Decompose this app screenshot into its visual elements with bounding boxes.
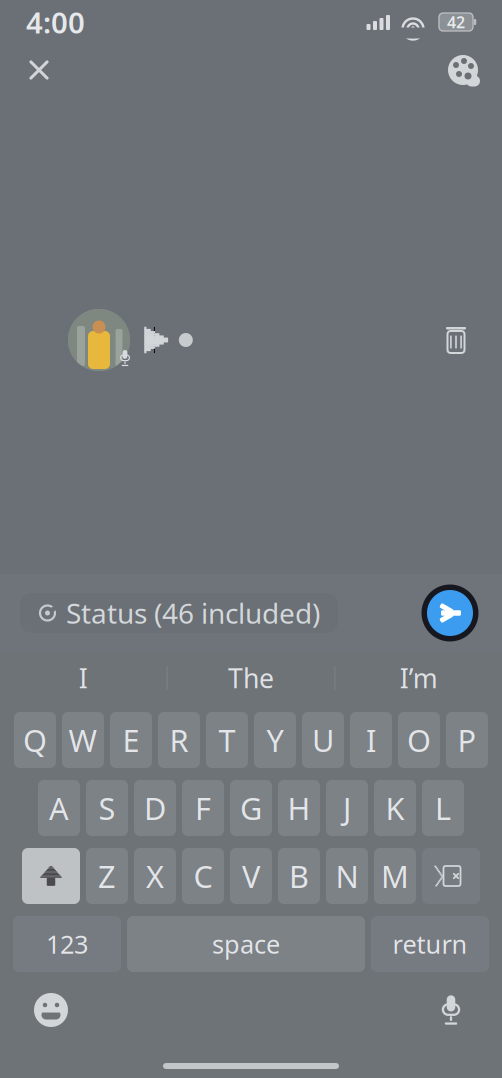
button[interactable]: Delete — [434, 318, 478, 362]
button[interactable]: Q — [14, 712, 56, 768]
button[interactable]: V — [230, 848, 272, 904]
button[interactable]: W — [62, 712, 104, 768]
staticText: K — [385, 788, 404, 828]
staticText: I’m — [400, 660, 438, 696]
button[interactable]: I — [0, 652, 167, 704]
button[interactable]: 123 — [13, 916, 121, 972]
staticText: M — [381, 856, 409, 896]
staticText: W — [68, 720, 97, 760]
staticText: X — [146, 856, 164, 896]
button[interactable]: Send — [419, 582, 481, 644]
button[interactable]: L — [422, 780, 464, 836]
staticText: The — [228, 660, 274, 696]
staticText: F — [195, 788, 211, 828]
button[interactable]: M — [374, 848, 416, 904]
button[interactable]: Dictate — [422, 984, 480, 1036]
staticText: return — [392, 927, 467, 961]
button[interactable]: Emoji — [22, 984, 80, 1036]
button[interactable]: O — [398, 712, 440, 768]
button[interactable]: D — [134, 780, 176, 836]
button[interactable]: Y — [254, 712, 296, 768]
button[interactable]: R — [158, 712, 200, 768]
staticText: I — [366, 720, 376, 760]
button[interactable]: return — [371, 916, 489, 972]
button[interactable]: G — [230, 780, 272, 836]
staticText: H — [287, 788, 310, 828]
button[interactable]: Shift — [22, 848, 80, 904]
button[interactable]: I’m — [335, 652, 502, 704]
staticText: R — [169, 720, 188, 760]
button[interactable]: T — [206, 712, 248, 768]
staticText: U — [312, 720, 334, 760]
button[interactable]: U — [302, 712, 344, 768]
button[interactable]: space — [127, 916, 365, 972]
staticText: J — [343, 788, 351, 828]
button[interactable]: Theme — [440, 47, 486, 93]
staticText: Q — [23, 720, 47, 760]
staticText: T — [218, 720, 235, 760]
staticText: P — [457, 720, 476, 760]
staticText: S — [98, 788, 115, 828]
staticText: 42 — [447, 11, 465, 33]
staticText: N — [335, 856, 358, 896]
button[interactable]: S — [86, 780, 128, 836]
button[interactable]: J — [326, 780, 368, 836]
button[interactable]: F — [182, 780, 224, 836]
staticText: A — [49, 788, 69, 828]
staticText: 4:00 — [26, 2, 85, 41]
button[interactable]: Delete — [422, 848, 480, 904]
staticText: E — [122, 720, 139, 760]
button[interactable]: C — [182, 848, 224, 904]
button[interactable]: A — [38, 780, 80, 836]
button[interactable]: B — [278, 848, 320, 904]
staticText: Z — [98, 856, 116, 896]
button[interactable]: E — [110, 712, 152, 768]
button[interactable]: K — [374, 780, 416, 836]
staticText: B — [289, 856, 309, 896]
button[interactable]: Z — [86, 848, 128, 904]
staticText: Y — [266, 720, 283, 760]
staticText: O — [407, 720, 431, 760]
staticText: Status (46 included) — [66, 594, 320, 632]
button[interactable]: N — [326, 848, 368, 904]
button[interactable]: P — [446, 712, 488, 768]
staticText: 123 — [46, 927, 88, 961]
staticText: C — [193, 856, 212, 896]
staticText: space — [212, 927, 280, 961]
staticText: L — [435, 788, 451, 828]
staticText: V — [242, 856, 260, 896]
button[interactable]: Close — [16, 47, 62, 93]
staticText: I — [79, 660, 88, 696]
staticText: D — [144, 788, 166, 828]
button[interactable]: X — [134, 848, 176, 904]
button[interactable]: I — [350, 712, 392, 768]
button[interactable]: H — [278, 780, 320, 836]
button[interactable]: The — [168, 652, 334, 704]
button[interactable]: Status (46 included) — [20, 593, 338, 633]
staticText: G — [240, 788, 262, 828]
